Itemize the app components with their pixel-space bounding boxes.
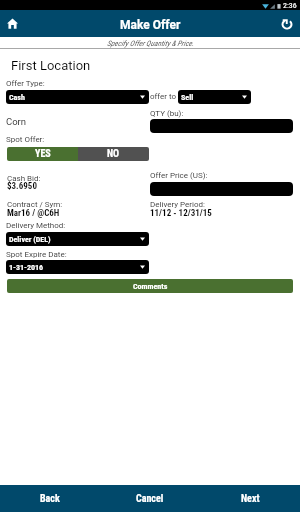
staticText: Offer Type: bbox=[6, 79, 45, 88]
button[interactable]: Comments bbox=[7, 279, 293, 293]
staticText: Sell bbox=[181, 93, 194, 102]
staticText: Delivery Method: bbox=[6, 221, 66, 230]
button[interactable]: Refresh bbox=[275, 12, 298, 35]
staticText: Deliver (DEL) bbox=[9, 235, 51, 244]
staticText: YES bbox=[35, 148, 51, 160]
staticText: Specify Offer Quantity & Price. bbox=[107, 39, 194, 48]
staticText: Make Offer bbox=[120, 18, 181, 32]
staticText: $3.6950 bbox=[7, 181, 37, 192]
button[interactable]: 1-31-2016 bbox=[6, 260, 149, 274]
staticText: 1-31-2016 bbox=[9, 263, 44, 272]
staticText: QTY (bu): bbox=[150, 109, 184, 118]
staticText: Spot Offer: bbox=[6, 135, 45, 144]
button[interactable]: Cash bbox=[6, 90, 149, 104]
staticText: 11/12 - 12/31/15 bbox=[150, 208, 212, 219]
button[interactable]: Cancel bbox=[100, 485, 200, 512]
staticText: Spot Expire Date: bbox=[6, 250, 67, 259]
button[interactable]: Home bbox=[1, 12, 24, 35]
button[interactable]: Next bbox=[200, 485, 300, 512]
button[interactable]: Deliver (DEL) bbox=[6, 232, 149, 246]
staticText: Delivery Period: bbox=[150, 200, 205, 209]
staticText: First Location bbox=[11, 58, 91, 73]
staticText: Cash Bid: bbox=[7, 174, 41, 183]
staticText: Comments bbox=[133, 282, 168, 291]
staticText: Back bbox=[40, 493, 60, 505]
staticText: Cancel bbox=[136, 493, 164, 505]
staticText: NO bbox=[107, 148, 120, 160]
staticText: Offer Price (US): bbox=[150, 171, 208, 180]
button[interactable] bbox=[150, 182, 293, 196]
button[interactable] bbox=[150, 119, 293, 133]
button[interactable]: Back bbox=[0, 485, 100, 512]
button[interactable]: Sell bbox=[178, 90, 251, 104]
staticText: 2:36 bbox=[283, 1, 297, 10]
staticText: Mar16 / @C6H bbox=[7, 208, 60, 219]
staticText: Corn bbox=[6, 116, 27, 127]
button[interactable]: YES bbox=[7, 147, 78, 161]
staticText: offer to bbox=[150, 92, 177, 101]
staticText: Cash bbox=[9, 93, 25, 102]
staticText: Contract / Sym: bbox=[7, 200, 63, 209]
staticText: Next bbox=[241, 493, 260, 505]
button[interactable]: NO bbox=[78, 147, 149, 161]
